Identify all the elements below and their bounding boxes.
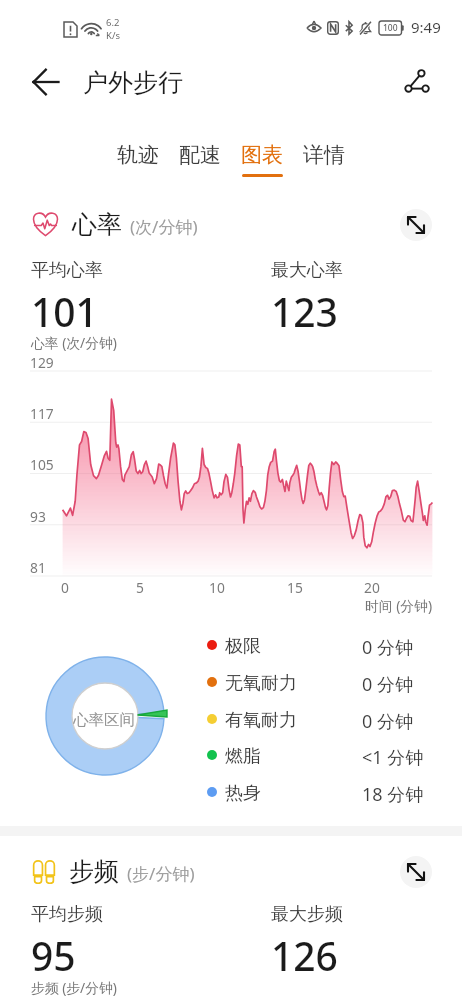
staticText: 6.2	[106, 16, 120, 29]
staticText: 配速	[179, 142, 221, 168]
staticText: 100	[383, 22, 398, 34]
button[interactable]: 详情	[293, 142, 355, 177]
staticText: 详情	[303, 142, 345, 168]
staticText: (步/分钟)	[127, 862, 195, 885]
staticText: 平均步频	[31, 903, 103, 926]
staticText: 时间 (分钟)	[365, 596, 433, 615]
staticText: 101	[31, 285, 98, 338]
staticText: 126	[271, 929, 338, 982]
staticText: 18 分钟	[362, 782, 424, 807]
button[interactable]: Expand	[400, 856, 432, 888]
staticText: 15	[275, 578, 315, 597]
staticText: (次/分钟)	[130, 215, 198, 238]
staticText: 图表	[241, 142, 283, 168]
staticText: 93	[30, 507, 46, 526]
staticText: 117	[30, 404, 54, 423]
staticText: 户外步行	[83, 67, 183, 98]
staticText: 心率	[72, 209, 122, 240]
staticText: 81	[30, 558, 46, 577]
button[interactable]: 图表	[231, 142, 293, 177]
staticText: 步频	[69, 856, 119, 887]
staticText: 热身	[225, 782, 261, 805]
staticText: 20	[352, 578, 392, 597]
staticText: 0	[45, 578, 85, 597]
staticText: 95	[31, 929, 76, 982]
staticText: 10	[197, 578, 237, 597]
staticText: 9:49	[411, 17, 441, 37]
staticText: 心率 (次/分钟)	[31, 333, 117, 352]
staticText: 0 分钟	[362, 709, 413, 734]
staticText: 心率区间	[73, 710, 135, 730]
staticText: 0 分钟	[362, 672, 413, 697]
staticText: 129	[30, 353, 54, 372]
staticText: 无氧耐力	[225, 672, 297, 695]
staticText: 最大心率	[271, 259, 343, 282]
staticText: 步频 (步/分钟)	[31, 978, 117, 997]
button[interactable]: 配速	[169, 142, 231, 177]
staticText: 5	[120, 578, 160, 597]
staticText: <1 分钟	[362, 745, 424, 770]
button[interactable]: Share	[394, 60, 438, 104]
staticText: 有氧耐力	[225, 709, 297, 732]
staticText: 平均心率	[31, 259, 103, 282]
button[interactable]: Back	[24, 60, 68, 104]
button[interactable]: Expand	[400, 209, 432, 241]
button[interactable]: 轨迹	[107, 142, 169, 177]
staticText: K/s	[106, 29, 120, 42]
staticText: 燃脂	[225, 745, 261, 768]
staticText: 0 分钟	[362, 635, 413, 660]
staticText: 123	[271, 285, 338, 338]
staticText: 极限	[225, 635, 261, 658]
staticText: 轨迹	[117, 142, 159, 168]
staticText: 105	[30, 455, 54, 474]
staticText: 最大步频	[271, 903, 343, 926]
